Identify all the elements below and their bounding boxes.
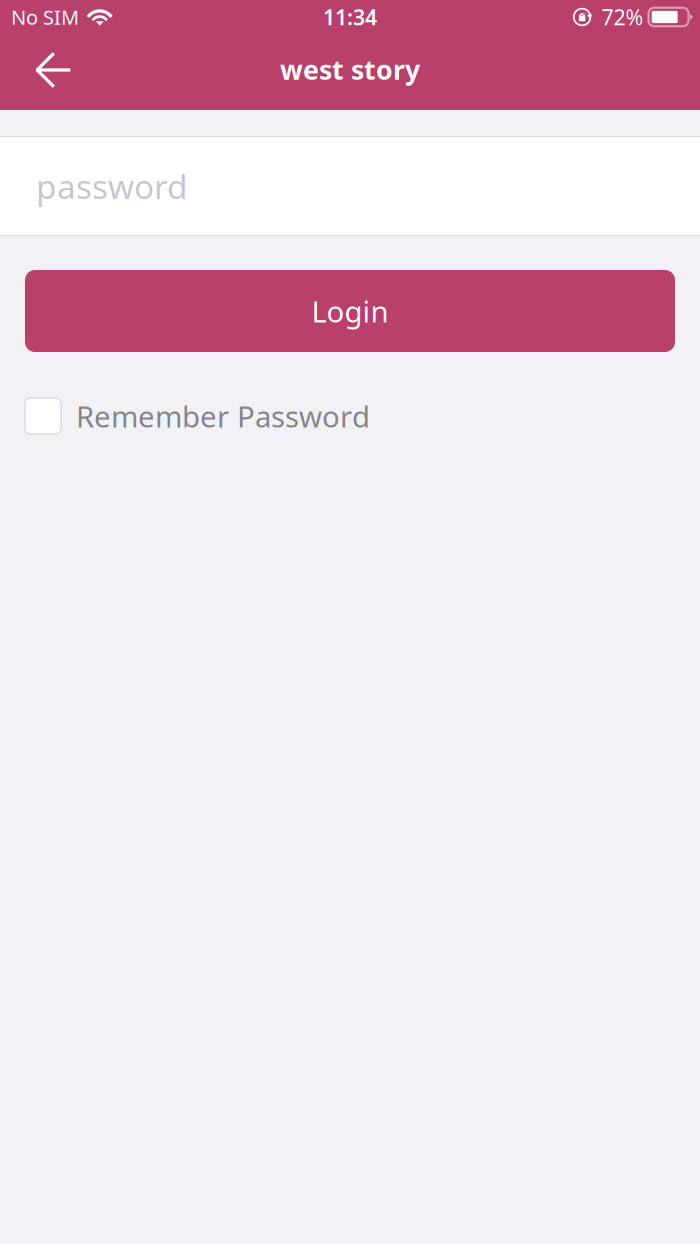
staticText: 72% — [601, 3, 643, 31]
staticText: west story — [280, 52, 420, 87]
staticText: Login — [311, 291, 388, 330]
button[interactable]: Remember Password — [0, 394, 700, 438]
button[interactable]: Login — [25, 270, 675, 352]
staticText: No SIM — [11, 4, 79, 30]
staticText: 11:34 — [323, 3, 377, 31]
staticText: password — [36, 164, 188, 208]
staticText: Remember Password — [76, 396, 370, 435]
button[interactable]: Back — [0, 36, 89, 108]
